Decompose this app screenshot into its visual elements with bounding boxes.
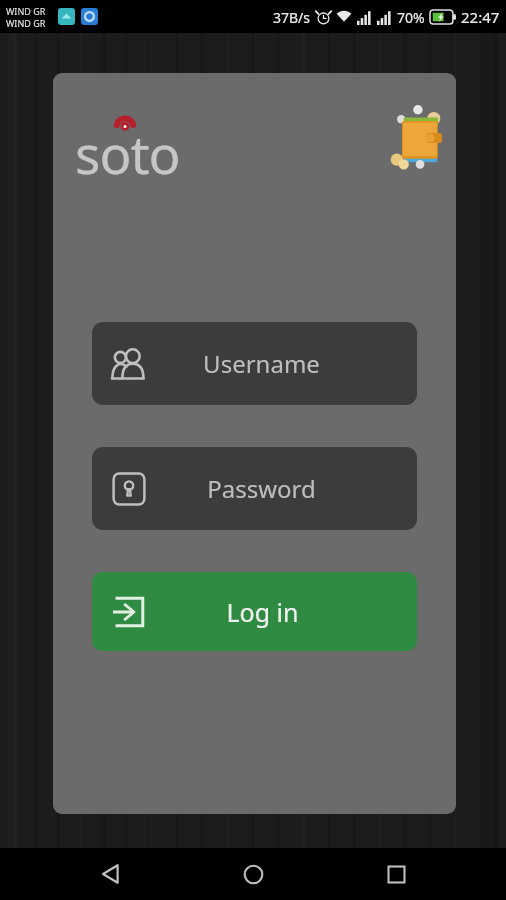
staticText: Log in	[226, 595, 299, 629]
staticText: 22:47	[461, 7, 500, 27]
staticText: WIND GR	[6, 5, 46, 17]
staticText: 37B/s	[273, 8, 311, 27]
other: Wallet	[356, 99, 442, 185]
staticText: WIND GR	[6, 17, 46, 29]
button[interactable]: Home	[221, 848, 285, 900]
button[interactable]: Back	[79, 848, 143, 900]
button[interactable]: Recent apps	[364, 848, 428, 900]
staticText: Username	[203, 347, 320, 380]
staticText: Password	[207, 472, 316, 505]
button[interactable]: Username	[92, 322, 417, 405]
button[interactable]: Log in	[92, 572, 417, 651]
staticText: soto	[75, 117, 180, 189]
button[interactable]: Password	[92, 447, 417, 530]
staticText: 70%	[397, 8, 425, 27]
